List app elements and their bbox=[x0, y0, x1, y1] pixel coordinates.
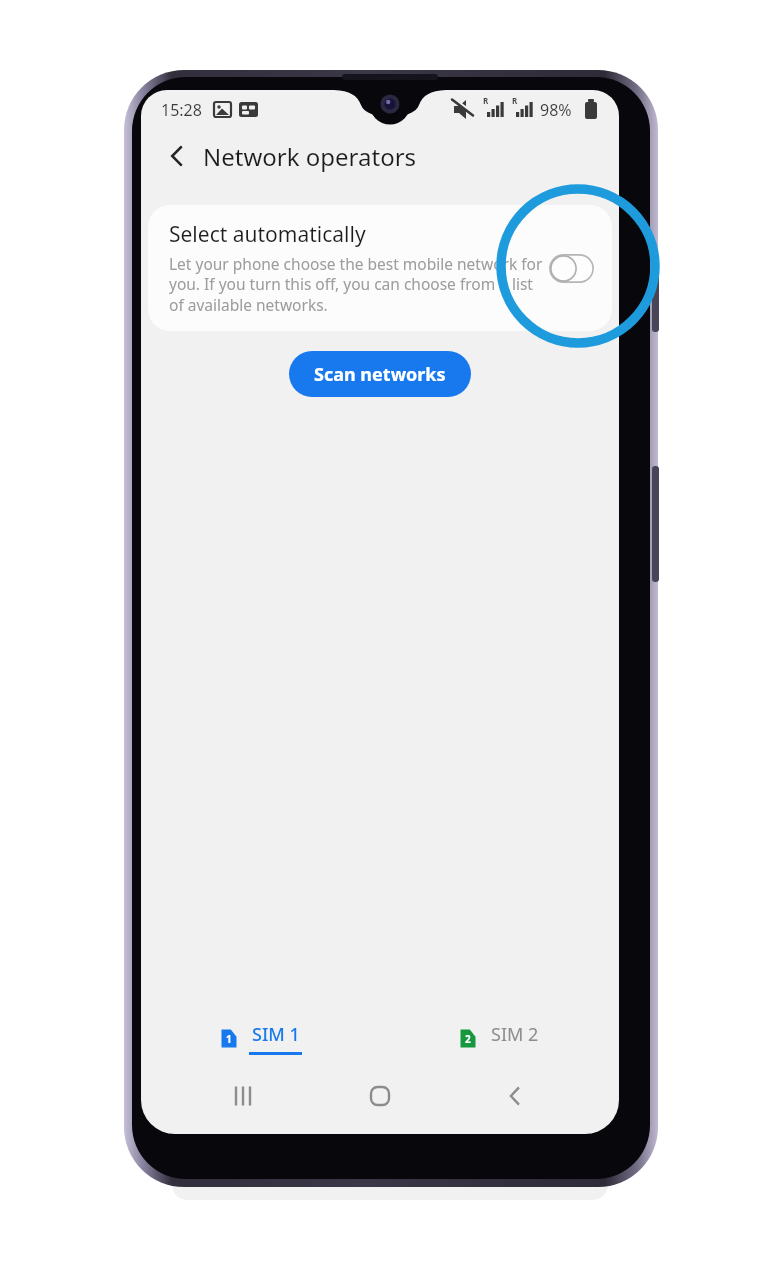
staticText: R bbox=[512, 95, 518, 106]
button[interactable]: Select automatically, off bbox=[544, 248, 598, 288]
staticText: 15:28 bbox=[161, 99, 202, 121]
staticText: R bbox=[483, 95, 489, 106]
button[interactable]: 2 bbox=[380, 1010, 619, 1066]
button[interactable]: Home bbox=[340, 1066, 420, 1126]
button[interactable]: Back bbox=[155, 134, 199, 178]
staticText: SIM 1 bbox=[252, 1022, 300, 1047]
staticText: Network operators bbox=[203, 140, 417, 173]
staticText: Select automatically bbox=[169, 220, 366, 249]
button[interactable]: Back bbox=[475, 1066, 555, 1126]
button[interactable]: Recents bbox=[203, 1066, 283, 1126]
button[interactable]: Select automatically bbox=[148, 205, 612, 331]
staticText: 2 bbox=[465, 1032, 471, 1046]
button[interactable]: Scan networks bbox=[289, 351, 471, 397]
button[interactable]: 1 bbox=[141, 1010, 380, 1066]
staticText: 1 bbox=[226, 1032, 232, 1046]
staticText: 98% bbox=[540, 99, 572, 121]
staticText: SIM 2 bbox=[491, 1022, 539, 1047]
staticText: Let your phone choose the best mobile ne… bbox=[169, 253, 544, 316]
staticText: Scan networks bbox=[314, 362, 446, 387]
